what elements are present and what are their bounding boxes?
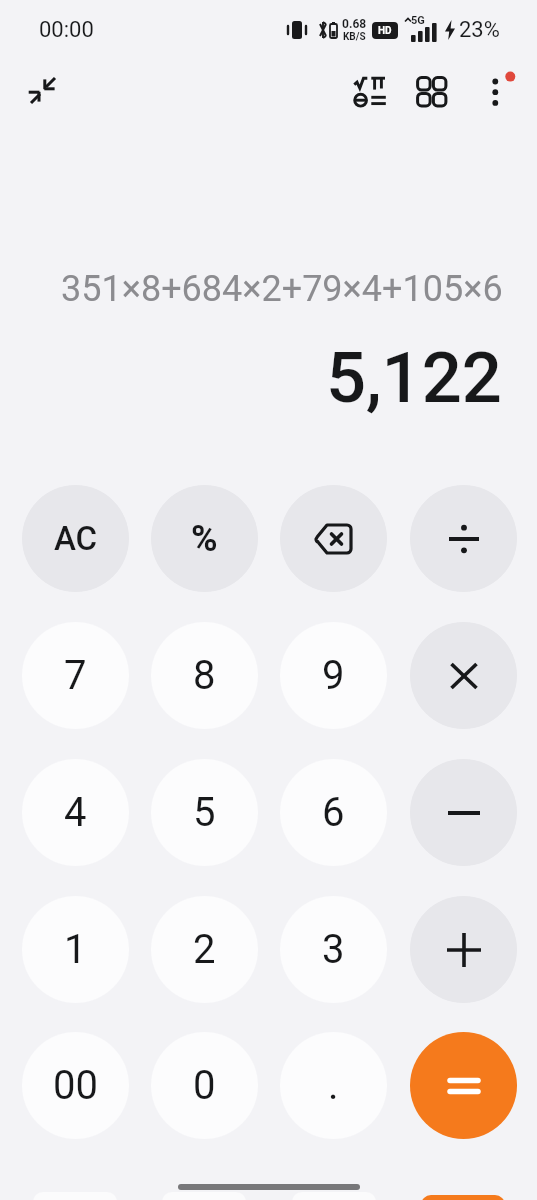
staticText: % <box>191 518 218 560</box>
staticText: 5G <box>411 14 425 27</box>
staticText: 5,122 <box>326 337 502 420</box>
staticText: . <box>328 1062 339 1109</box>
staticText: KB/S <box>343 31 366 43</box>
staticText: 8 <box>193 652 216 699</box>
button[interactable] <box>280 485 387 592</box>
staticText: 5 <box>193 789 216 836</box>
staticText: 23% <box>459 17 500 43</box>
staticText: 00 <box>53 1062 98 1109</box>
button[interactable]: 9 <box>280 622 387 729</box>
staticText: 3 <box>322 926 345 973</box>
button[interactable] <box>410 485 517 592</box>
staticText: AC <box>54 519 98 558</box>
button[interactable]: 7 <box>22 622 129 729</box>
button[interactable]: 0 <box>151 1032 258 1139</box>
button[interactable]: 1 <box>22 896 129 1003</box>
button[interactable]: 5 <box>151 759 258 866</box>
button[interactable] <box>26 75 60 109</box>
button[interactable] <box>410 759 517 866</box>
button[interactable]: AC <box>22 485 129 592</box>
staticText: 0.68 <box>342 17 367 31</box>
button[interactable] <box>410 1032 517 1139</box>
button[interactable] <box>416 76 448 108</box>
staticText: 00:00 <box>39 17 94 43</box>
button[interactable] <box>410 622 517 729</box>
staticText: 4 <box>64 789 87 836</box>
staticText: 7 <box>64 652 87 699</box>
staticText: 351×8+684×2+79×4+105×6 <box>61 268 503 310</box>
staticText: 9 <box>322 652 345 699</box>
button[interactable] <box>410 896 517 1003</box>
button[interactable]: 6 <box>280 759 387 866</box>
button[interactable]: 2 <box>151 896 258 1003</box>
staticText: HD <box>378 25 392 37</box>
button[interactable] <box>482 66 522 118</box>
button[interactable]: 3 <box>280 896 387 1003</box>
staticText: 0 <box>193 1062 216 1109</box>
staticText: 1 <box>64 926 87 973</box>
button[interactable]: 8 <box>151 622 258 729</box>
button[interactable] <box>353 75 387 109</box>
button[interactable]: % <box>151 485 258 592</box>
staticText: 2 <box>193 926 216 973</box>
button[interactable]: 4 <box>22 759 129 866</box>
button[interactable]: 00 <box>22 1032 129 1139</box>
staticText: 6 <box>322 789 345 836</box>
button[interactable]: . <box>280 1032 387 1139</box>
